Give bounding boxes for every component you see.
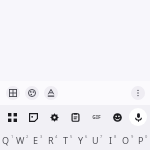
button[interactable]: Settings — [45, 108, 63, 126]
button[interactable]: Y — [75, 129, 90, 150]
button[interactable]: E — [30, 129, 45, 150]
button[interactable]: Clipboard — [66, 108, 84, 126]
button[interactable]: Q — [0, 129, 15, 150]
button[interactable]: I — [105, 129, 120, 150]
button[interactable]: R — [45, 129, 60, 150]
button[interactable]: More options — [131, 86, 145, 100]
staticText: T — [63, 134, 69, 146]
staticText: 2 — [26, 134, 29, 139]
button[interactable]: U — [90, 129, 105, 150]
staticText: 8 — [114, 134, 117, 139]
button[interactable]: T — [60, 129, 75, 150]
button[interactable]: P — [135, 129, 150, 150]
staticText: O — [122, 134, 130, 146]
button[interactable]: O — [120, 129, 135, 150]
staticText: 1 — [11, 134, 14, 139]
staticText: E — [33, 134, 39, 146]
staticText: 4 — [55, 134, 58, 139]
button[interactable]: Emoji — [108, 108, 126, 126]
staticText: W — [16, 134, 25, 146]
staticText: U — [92, 134, 99, 146]
staticText: R — [48, 134, 54, 146]
button[interactable]: Voice input — [129, 108, 147, 126]
staticText: 7 — [100, 134, 103, 139]
staticText: Y — [78, 134, 84, 146]
staticText: P — [138, 134, 144, 146]
button[interactable]: Apps — [3, 108, 21, 126]
staticText: I — [109, 134, 113, 146]
button[interactable]: W — [15, 129, 30, 150]
staticText: 3 — [40, 134, 43, 139]
staticText: 0 — [145, 134, 148, 139]
staticText: 6 — [85, 134, 88, 139]
button[interactable]: Stickers — [24, 108, 42, 126]
staticText: GIF — [92, 114, 101, 121]
button[interactable]: Text format — [44, 86, 58, 100]
staticText: 9 — [131, 134, 134, 139]
staticText: Q — [2, 134, 10, 146]
button[interactable]: Insert table — [6, 86, 20, 100]
button[interactable]: Text color — [25, 86, 39, 100]
button[interactable]: GIF — [87, 108, 105, 126]
staticText: 5 — [70, 134, 73, 139]
